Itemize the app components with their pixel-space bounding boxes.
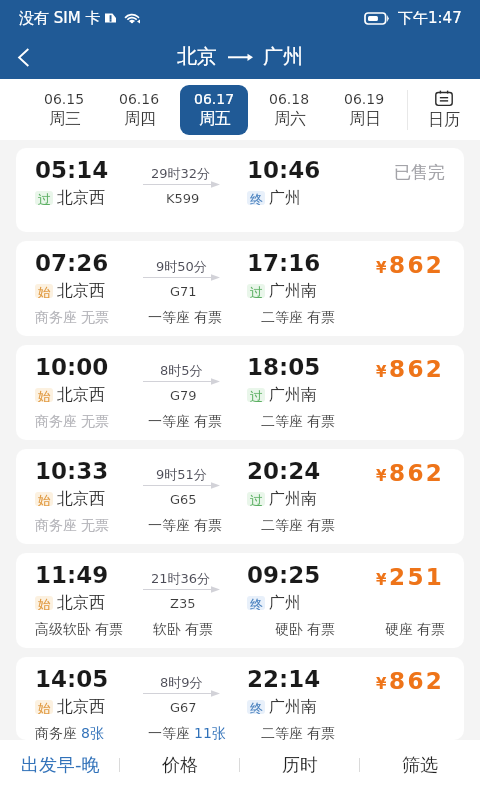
staticText: 终	[250, 191, 263, 205]
staticText: 硬卧	[275, 621, 303, 639]
staticText: 广州南	[269, 489, 317, 509]
staticText: 二等座	[261, 517, 303, 535]
staticText: 商务座	[35, 309, 77, 327]
button[interactable]: 11:49	[16, 553, 464, 648]
staticText: 10:33	[35, 458, 109, 485]
staticText: ¥	[376, 571, 387, 588]
staticText: 商务座	[35, 725, 77, 740]
staticText: Z35	[170, 596, 196, 611]
staticText: 29时32分	[151, 165, 211, 181]
staticText: 北京	[177, 44, 217, 69]
staticText: 11张	[194, 725, 226, 740]
button[interactable]: 返回	[0, 36, 46, 79]
staticText: G65	[170, 492, 197, 507]
staticText: 一等座	[148, 725, 190, 740]
staticText: 硬座	[385, 621, 413, 639]
staticText: G71	[170, 284, 197, 299]
staticText: 22:14	[247, 666, 321, 693]
staticText: 11:49	[35, 562, 109, 589]
staticText: 有票	[95, 621, 123, 639]
staticText: 北京西	[57, 489, 105, 509]
button[interactable]: 05:14	[16, 148, 464, 232]
staticText: 出发早-晚	[21, 754, 100, 777]
staticText: 9时50分	[156, 258, 207, 274]
button[interactable]: 历时	[240, 740, 360, 800]
staticText: 862	[389, 460, 445, 487]
staticText: 始	[38, 388, 51, 402]
staticText: 广州南	[269, 385, 317, 405]
staticText: 广州南	[269, 281, 317, 301]
staticText: 无票	[81, 309, 109, 327]
button[interactable]: 10:33	[16, 449, 464, 544]
staticText: ¥	[376, 675, 387, 692]
staticText: 终	[250, 596, 263, 610]
staticText: G79	[170, 388, 197, 403]
staticText: 广州	[263, 44, 303, 69]
staticText: 软卧	[153, 621, 181, 639]
button[interactable]: 06.17	[180, 85, 248, 135]
staticText: 始	[38, 284, 51, 298]
button[interactable]: 筛选	[360, 740, 480, 800]
staticText: 一等座	[148, 517, 190, 535]
staticText: 17:16	[247, 250, 321, 277]
staticText: 07:26	[35, 250, 109, 277]
staticText: 周六	[274, 109, 306, 129]
staticText: 251	[389, 564, 445, 591]
staticText: 周日	[349, 109, 381, 129]
staticText: 有票	[194, 517, 222, 535]
staticText: ¥	[376, 467, 387, 484]
staticText: 始	[38, 700, 51, 714]
button[interactable]: 出发早-晚	[0, 740, 120, 800]
button[interactable]: 06.19	[330, 85, 398, 135]
staticText: 北京西	[57, 593, 105, 613]
staticText: 周三	[49, 109, 81, 129]
staticText: 二等座	[261, 725, 303, 740]
staticText: 有票	[417, 621, 445, 639]
staticText: 二等座	[261, 309, 303, 327]
staticText: 历时	[282, 754, 318, 777]
staticText: 8时9分	[160, 674, 203, 690]
button[interactable]: 07:26	[16, 241, 464, 336]
staticText: 过	[250, 492, 263, 506]
staticText: 862	[389, 252, 445, 279]
staticText: 周五	[199, 109, 231, 129]
staticText: 过	[38, 191, 51, 205]
staticText: 二等座	[261, 413, 303, 431]
staticText: 商务座	[35, 517, 77, 535]
staticText: 过	[250, 284, 263, 298]
staticText: 有票	[307, 725, 335, 740]
staticText: 8张	[81, 725, 104, 740]
button[interactable]: 14:05	[16, 657, 464, 740]
staticText: 商务座	[35, 413, 77, 431]
staticText: 北京西	[57, 385, 105, 405]
staticText: 一等座	[148, 309, 190, 327]
staticText: 06.16	[119, 91, 160, 107]
button[interactable]: 06.15	[30, 85, 98, 135]
staticText: K599	[166, 191, 200, 206]
staticText: 14:05	[35, 666, 109, 693]
staticText: 北京西	[57, 281, 105, 301]
staticText: 10:46	[247, 157, 321, 184]
staticText: 18:05	[247, 354, 321, 381]
staticText: 9时51分	[156, 466, 207, 482]
button[interactable]: 10:00	[16, 345, 464, 440]
staticText: 广州南	[269, 697, 317, 717]
staticText: G67	[170, 700, 197, 715]
staticText: 过	[250, 388, 263, 402]
staticText: 价格	[162, 754, 198, 777]
button[interactable]: 价格	[120, 740, 240, 800]
staticText: 862	[389, 356, 445, 383]
staticText: 无票	[81, 413, 109, 431]
button[interactable]: 06.18	[255, 85, 323, 135]
staticText: 06.17	[194, 91, 235, 107]
staticText: 05:14	[35, 157, 109, 184]
staticText: ¥	[376, 363, 387, 380]
staticText: 始	[38, 492, 51, 506]
staticText: 终	[250, 700, 263, 714]
button[interactable]: 日历	[408, 79, 480, 140]
staticText: 21时36分	[151, 570, 211, 586]
button[interactable]: 06.16	[105, 85, 173, 135]
staticText: 8时5分	[160, 362, 203, 378]
staticText: 一等座	[148, 413, 190, 431]
staticText: 10:00	[35, 354, 109, 381]
